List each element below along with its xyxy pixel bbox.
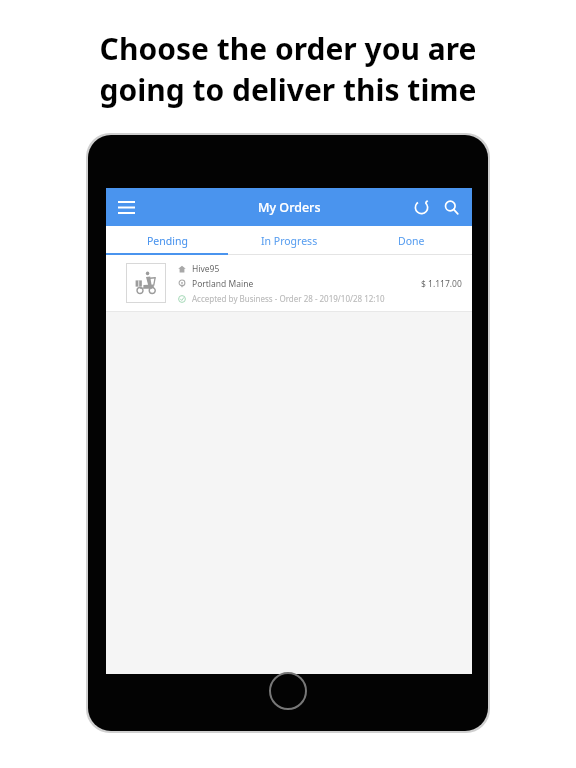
- button[interactable]: Done: [350, 226, 472, 255]
- button[interactable]: In Progress: [228, 226, 350, 255]
- button[interactable]: Open navigation menu: [106, 188, 146, 226]
- staticText: Done: [398, 234, 425, 248]
- button[interactable]: Pending: [106, 226, 228, 255]
- staticText: My Orders: [258, 199, 321, 216]
- button[interactable]: Search: [436, 192, 466, 222]
- staticText: Choose the order you are going to delive…: [40, 28, 536, 110]
- staticText: Hive95: [192, 263, 220, 275]
- button[interactable]: Home: [269, 672, 307, 710]
- staticText: In Progress: [261, 234, 318, 248]
- button[interactable]: Hive95: [106, 255, 472, 312]
- staticText: $ 1.117.00: [421, 278, 462, 290]
- staticText: Accepted by Business - Order 28 - 2019/1…: [192, 293, 385, 304]
- staticText: Portland Maine: [192, 278, 254, 290]
- button[interactable]: Refresh: [406, 192, 436, 222]
- staticText: Pending: [147, 234, 188, 248]
